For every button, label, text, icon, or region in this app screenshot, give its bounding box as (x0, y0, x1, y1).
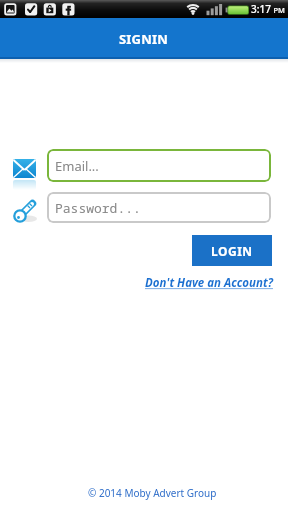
button[interactable]: Don't Have an Account? (145, 275, 273, 291)
button[interactable]: LOGIN (192, 235, 272, 266)
staticText: LOGIN (211, 243, 253, 259)
button[interactable]: Email... (47, 149, 271, 182)
staticText: © 2014 Moby Advert Group (88, 486, 217, 500)
button[interactable]: Password... (47, 192, 271, 223)
staticText: Email... (55, 157, 99, 175)
staticText: 3:17 PM (251, 2, 285, 16)
staticText: Password... (55, 199, 141, 217)
staticText: SIGNIN (119, 30, 169, 48)
